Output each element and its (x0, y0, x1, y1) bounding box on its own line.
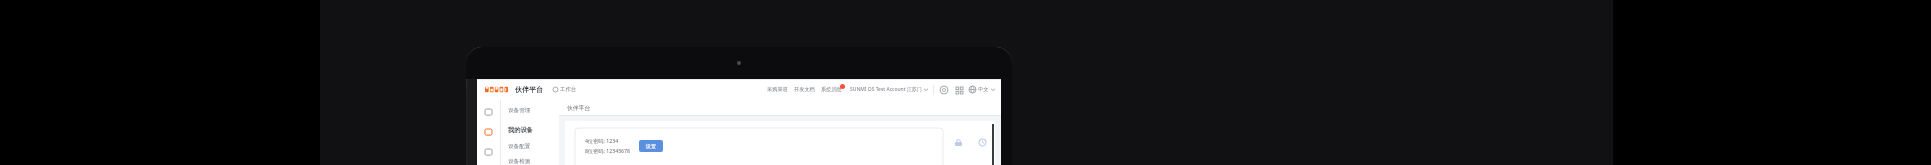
button[interactable]: 我的设备 (508, 124, 559, 135)
staticText: 设置 (646, 143, 656, 149)
staticText: 设备配置 (508, 143, 531, 150)
button[interactable]: Lock (953, 137, 964, 148)
button[interactable]: My devices (477, 127, 500, 138)
button[interactable]: 设备管理 (508, 106, 559, 115)
button[interactable]: 设备配置 (508, 142, 559, 151)
button[interactable]: 系统消息 (818, 86, 845, 93)
staticText: 8位密码: 12345678 (585, 147, 631, 154)
staticText: 设备检测 (508, 158, 531, 165)
staticText: 伙伴平台 (515, 85, 543, 94)
button[interactable]: Overview (477, 107, 500, 118)
button[interactable]: 设置 (639, 140, 663, 152)
button[interactable]: Device config (477, 147, 500, 158)
staticText: 4位密码: 1234 (585, 137, 619, 144)
staticText: 设备管理 (508, 107, 531, 114)
button[interactable]: Settings (939, 85, 949, 95)
staticText: 我的设备 (508, 126, 533, 134)
button[interactable]: 设备检测 (508, 157, 559, 165)
staticText: 伙伴平台 (567, 104, 591, 111)
staticText: 系统消息 (821, 86, 842, 93)
button[interactable]: 中文 (969, 86, 995, 93)
staticText: 中文 (978, 86, 989, 93)
staticText: 工作台 (560, 86, 577, 93)
button[interactable]: SUNMI OS Test Account 江苏门 (850, 86, 928, 93)
button[interactable]: 工作台 (552, 86, 578, 93)
staticText: SUNMI OS Test Account 江苏门 (850, 86, 922, 93)
button[interactable]: 开发文档 (791, 86, 818, 93)
button[interactable]: 采购渠道 (764, 86, 791, 93)
button[interactable]: Refresh (977, 137, 988, 148)
button[interactable]: Apps (954, 85, 964, 95)
